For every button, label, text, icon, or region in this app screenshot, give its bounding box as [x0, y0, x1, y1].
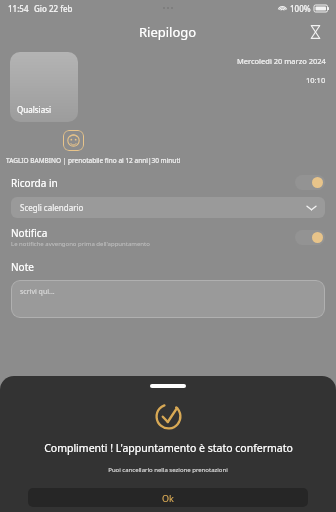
staticText: Note: [11, 260, 34, 274]
button[interactable]: Qualsiasi: [10, 52, 78, 122]
button[interactable]: Scegli calendario: [11, 197, 325, 218]
staticText: Ricorda in: [11, 176, 58, 190]
staticText: Ok: [162, 492, 174, 504]
button[interactable]: Ok: [28, 488, 308, 507]
staticText: TAGLIO BAMBINO | prenotabile fino ai 12 …: [6, 156, 181, 165]
staticText: scrivi qui...: [20, 287, 55, 297]
button[interactable]: Ricorda in: [0, 175, 336, 190]
staticText: 11:54: [8, 3, 29, 14]
staticText: Scegli calendario: [20, 202, 307, 213]
staticText: Puoi cancellarlo nella sezione prenotazi…: [108, 466, 228, 474]
button[interactable]: scrivi qui...: [11, 280, 325, 318]
staticText: Qualsiasi: [17, 104, 52, 115]
staticText: Mercoledì 20 marzo 2024: [237, 56, 326, 66]
staticText: Riepilogo: [139, 23, 197, 41]
other: Servizio bambino: [63, 130, 84, 151]
button[interactable]: Cronologia: [304, 21, 326, 43]
staticText: Complimenti ! L'appuntamento è stato con…: [44, 441, 293, 455]
staticText: 10:10: [306, 75, 326, 85]
staticText: 100%: [290, 3, 311, 14]
staticText: Le notifiche avvengono prima dell'appunt…: [11, 240, 150, 248]
button[interactable]: Notifica: [0, 226, 336, 248]
staticText: Gio 22 feb: [34, 3, 73, 14]
staticText: Notifica: [11, 226, 48, 240]
